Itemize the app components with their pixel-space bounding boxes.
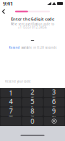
staticText: 9:41 bbox=[3, 0, 13, 7]
staticText: JKL bbox=[31, 106, 33, 108]
staticText: 1 bbox=[9, 88, 13, 97]
staticText: Resend your code bbox=[5, 80, 31, 83]
staticText: 4 bbox=[9, 97, 13, 106]
staticText: 9 bbox=[52, 106, 56, 115]
button[interactable]: 6 bbox=[44, 98, 64, 107]
staticText: 8 bbox=[30, 106, 34, 115]
button[interactable]: 9 bbox=[44, 107, 64, 116]
staticText: PQRS bbox=[9, 115, 13, 117]
staticText: ABC bbox=[31, 96, 34, 98]
staticText: 5 bbox=[30, 97, 34, 106]
button[interactable]: 3 bbox=[44, 89, 64, 97]
button[interactable]: 1 bbox=[0, 89, 21, 97]
staticText: available in 0:28 seconds bbox=[21, 46, 56, 49]
staticText: Enter the 6-digit code bbox=[11, 16, 54, 21]
staticText: MNO bbox=[53, 106, 56, 108]
staticText: 6 bbox=[52, 97, 56, 106]
staticText: TUV bbox=[31, 115, 34, 117]
button[interactable]: 0 bbox=[22, 117, 43, 125]
button[interactable]: Back bbox=[0, 7, 7, 16]
staticText: 0 bbox=[30, 117, 34, 126]
button[interactable]: 8 bbox=[22, 107, 43, 116]
staticText: We've sent a verification code to bbox=[10, 22, 54, 26]
staticText: DEF bbox=[53, 96, 56, 98]
button[interactable]: 7 bbox=[0, 107, 21, 116]
button[interactable]: Resend bbox=[9, 46, 20, 49]
staticText: 3 bbox=[52, 88, 56, 96]
staticText: GHI bbox=[10, 106, 12, 108]
staticText: 2 bbox=[30, 88, 34, 96]
staticText: WXYZ bbox=[52, 115, 56, 117]
button[interactable]: 4 bbox=[0, 98, 21, 107]
staticText: +1 (555) 012-3456 bbox=[18, 26, 47, 29]
staticText: 7 bbox=[9, 106, 13, 115]
staticText: Resend bbox=[9, 46, 20, 49]
button[interactable]: 2 bbox=[22, 89, 43, 97]
button[interactable]: 5 bbox=[22, 98, 43, 107]
button[interactable]: Delete bbox=[44, 117, 64, 125]
